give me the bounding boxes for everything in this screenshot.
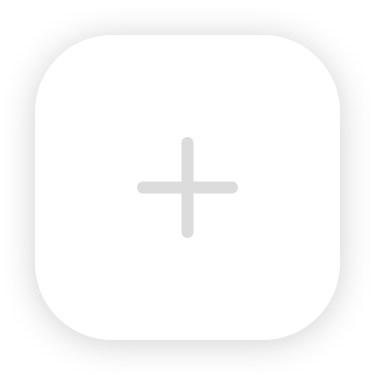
button[interactable]: Add bbox=[35, 35, 340, 340]
